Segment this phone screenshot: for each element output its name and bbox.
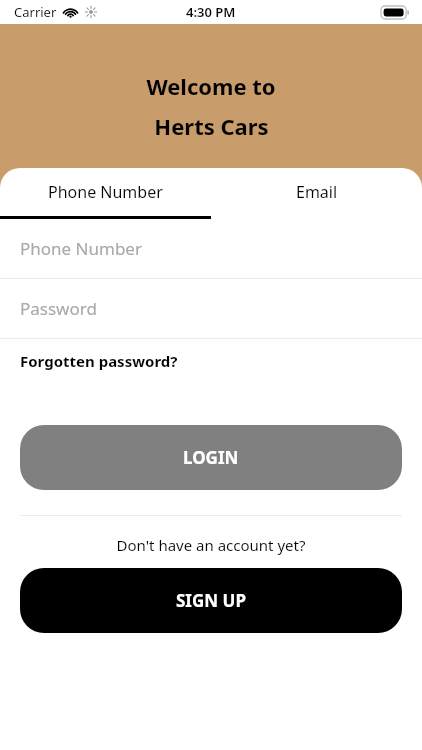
- staticText: Phone Number: [20, 237, 142, 260]
- staticText: 4:30 PM: [186, 3, 236, 21]
- staticText: Herts Cars: [154, 111, 269, 141]
- button[interactable]: LOGIN: [20, 425, 402, 490]
- staticText: Don't have an account yet?: [0, 535, 422, 555]
- staticText: Email: [296, 181, 338, 203]
- button[interactable]: Forgotten password?: [0, 339, 422, 383]
- button[interactable]: SIGN UP: [20, 568, 402, 633]
- staticText: SIGN UP: [176, 589, 246, 612]
- staticText: Welcome to: [146, 71, 276, 101]
- staticText: Forgotten password?: [20, 351, 178, 371]
- button[interactable]: Phone Number: [0, 168, 211, 216]
- staticText: Carrier: [14, 3, 57, 21]
- button[interactable]: Phone Number: [0, 219, 422, 278]
- button[interactable]: Password: [0, 279, 422, 338]
- button[interactable]: Email: [211, 168, 422, 216]
- staticText: LOGIN: [183, 446, 239, 469]
- staticText: Password: [20, 297, 97, 320]
- staticText: Phone Number: [48, 181, 163, 203]
